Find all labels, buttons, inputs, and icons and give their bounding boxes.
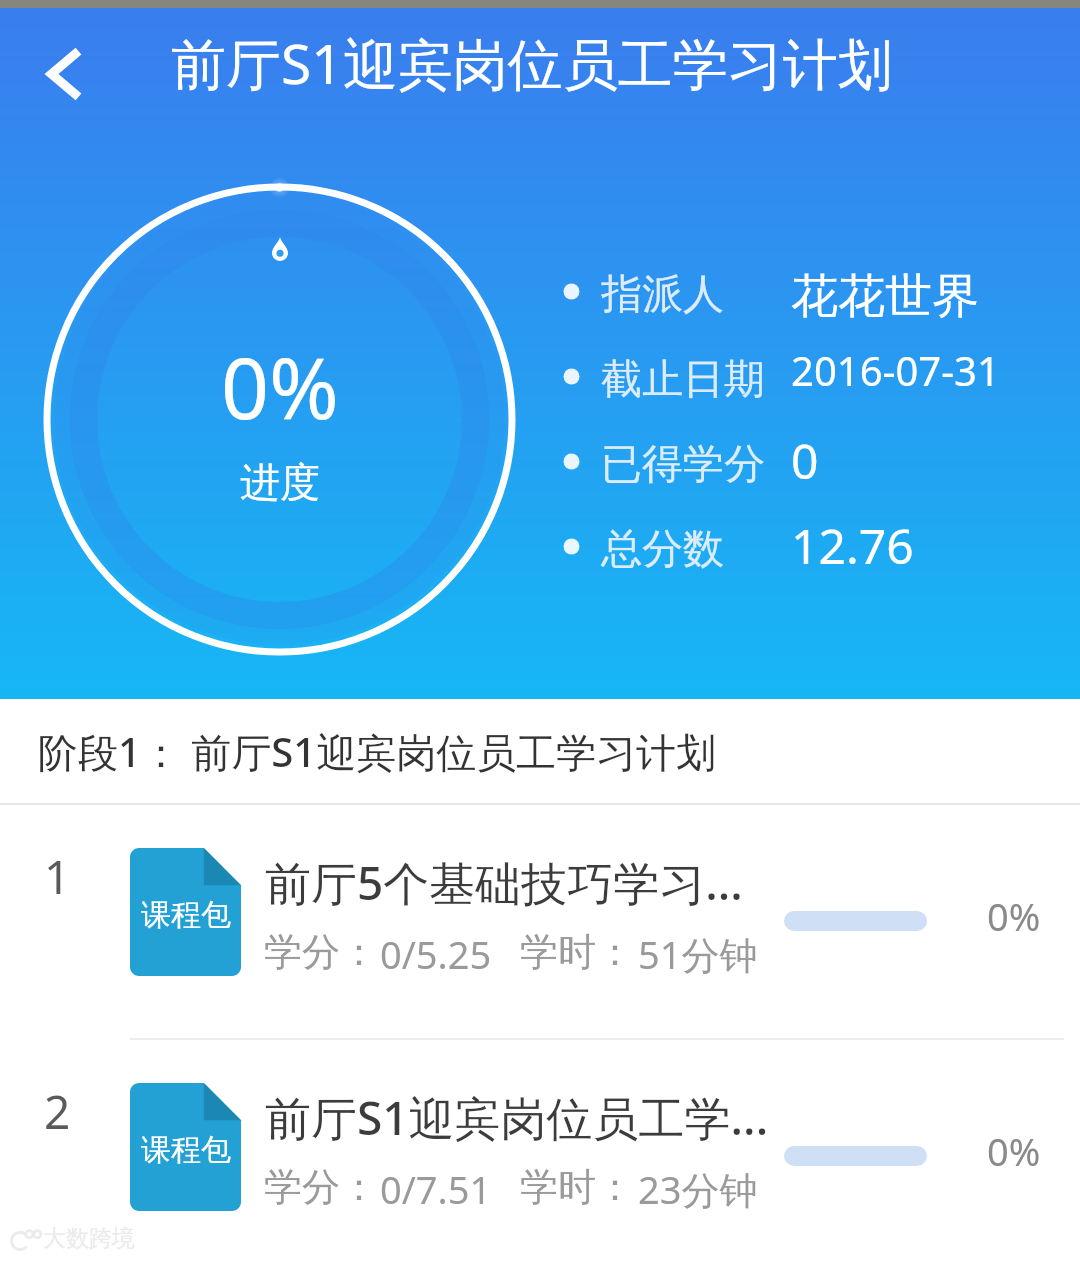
staticText: 学时： — [520, 928, 634, 976]
staticText: 前厅S1迎宾岗位员工学习计划 — [171, 25, 893, 100]
staticText: 前厅S1迎宾岗位员工学... — [265, 1086, 769, 1149]
staticText: 已得学分 — [601, 439, 765, 491]
staticText: 花花世界 — [791, 267, 979, 326]
staticText: 0/7.51 — [380, 1163, 492, 1215]
staticText: 1 — [44, 845, 71, 908]
staticText: 2 — [44, 1080, 71, 1143]
staticText: 12.76 — [791, 513, 914, 578]
staticText: 总分数 — [601, 524, 724, 576]
staticText: 指派人 — [601, 269, 724, 321]
staticText: 0% — [987, 1125, 1041, 1177]
staticText: 0 — [791, 428, 819, 493]
staticText: 截止日期 — [601, 354, 765, 406]
staticText: 2016-07-31 — [791, 343, 1000, 397]
staticText: 学分： — [264, 1163, 378, 1211]
staticText: 阶段1： 前厅S1迎宾岗位员工学习计划 — [38, 724, 717, 779]
staticText: 学时： — [520, 1163, 634, 1211]
button[interactable]: 1 — [0, 805, 1080, 1038]
staticText: 进度 — [240, 457, 320, 507]
button[interactable]: Back — [14, 22, 118, 126]
button[interactable]: 2 — [0, 1040, 1080, 1265]
staticText: 大数跨境 — [43, 1224, 135, 1253]
staticText: 51分钟 — [638, 928, 758, 980]
staticText: 学分： — [264, 928, 378, 976]
staticText: 课程包 — [141, 896, 231, 934]
staticText: 0% — [987, 890, 1041, 942]
button[interactable]: 阶段1： 前厅S1迎宾岗位员工学习计划 — [0, 699, 1080, 803]
staticText: 0/5.25 — [380, 928, 492, 980]
staticText: 0% — [221, 329, 339, 443]
staticText: 前厅5个基础技巧学习... — [265, 851, 743, 914]
staticText: 23分钟 — [638, 1163, 758, 1215]
staticText: 课程包 — [141, 1131, 231, 1169]
